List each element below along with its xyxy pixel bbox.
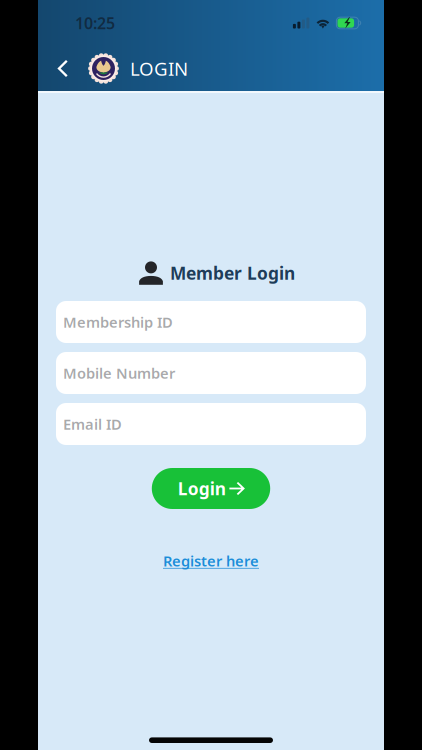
staticText: Register here <box>163 551 259 570</box>
button[interactable]: Email ID <box>56 403 366 445</box>
button[interactable]: Register here <box>163 551 259 570</box>
staticText: Mobile Number <box>63 363 175 383</box>
staticText: Membership ID <box>63 312 173 332</box>
staticText: 10:25 <box>75 12 115 34</box>
button[interactable]: Back <box>48 46 78 90</box>
button[interactable]: Mobile Number <box>56 352 366 394</box>
staticText: Email ID <box>63 414 122 434</box>
button[interactable]: Membership ID <box>56 301 366 343</box>
button[interactable]: Login <box>152 468 270 509</box>
staticText: Member Login <box>170 261 295 284</box>
staticText: LOGIN <box>130 56 188 81</box>
staticText: Login <box>178 477 226 500</box>
